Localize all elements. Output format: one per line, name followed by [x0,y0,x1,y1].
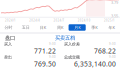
staticText: 771.22 [34,46,56,55]
button[interactable]: 周K [51,24,68,31]
staticText: 盘口 [5,35,15,41]
button[interactable]: 买卖五档 [55,35,75,41]
button[interactable]: 分时 [0,24,17,31]
staticText: 季K [91,25,97,30]
staticText: 2024/10 [78,19,91,22]
staticText: 9:30 [109,55,116,59]
button[interactable]: 日K [34,24,51,31]
staticText: 2024/1 [5,19,16,22]
staticText: 总成交额 [64,55,80,59]
button[interactable]: 五日 [17,24,34,31]
button[interactable]: 季K [86,24,103,31]
staticText: 年K [108,25,114,30]
staticText: 9:30 [109,42,116,46]
staticText: 买入 [4,42,12,46]
staticText: 769.50 [34,59,56,68]
staticText: 9:30 [49,55,56,59]
staticText: 2024/4 [29,19,40,22]
button[interactable]: 年K [103,24,120,31]
staticText: 2024/7 [53,19,64,22]
staticText: 周K [57,25,63,30]
staticText: 768.22 [94,46,116,55]
staticText: 月K [74,25,80,30]
staticText: 买卖五档 [55,35,75,41]
staticText: 分时 [5,25,13,30]
staticText: 6,353,140.00 [74,59,116,68]
staticText: 3.79 [111,0,118,5]
button[interactable]: 月K [69,24,86,31]
staticText: 2025/1 [104,19,115,22]
staticText: 9:30 [49,42,56,46]
staticText: 3.55 [111,13,118,18]
staticText: 日K [40,25,46,30]
staticText: 买入价差 [64,42,80,46]
staticText: 卖出 [4,55,12,59]
staticText: 五日 [22,25,30,30]
